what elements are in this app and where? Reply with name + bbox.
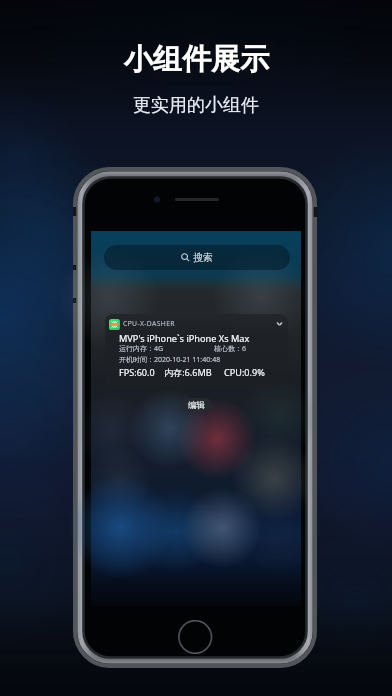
staticText: 小组件展示 bbox=[124, 41, 269, 78]
staticText: 更实用的小组件 bbox=[133, 94, 259, 117]
staticText: 开机时间：2020-10-21 11:40:48 bbox=[119, 355, 221, 365]
staticText: 搜索 bbox=[193, 251, 213, 264]
staticText: CPU-X-DASHER bbox=[123, 319, 175, 328]
staticText: 运行内存：4G bbox=[119, 344, 164, 354]
other: Collapse widget bbox=[274, 318, 285, 329]
staticText: 编辑 bbox=[188, 400, 205, 411]
staticText: FPS:60.0 bbox=[119, 366, 155, 378]
staticText: 内存:6.6MB bbox=[164, 366, 212, 378]
button[interactable]: 编辑 bbox=[181, 398, 212, 412]
staticText: MVP's iPhone`s iPhone Xs Max bbox=[119, 332, 250, 345]
staticText: CPU:0.9% bbox=[224, 366, 265, 378]
button[interactable]: Search bbox=[104, 245, 290, 270]
staticText: 核心数：6 bbox=[214, 344, 247, 354]
button[interactable]: CPU-X-DASHER bbox=[105, 314, 288, 387]
other: Search bbox=[181, 253, 190, 262]
